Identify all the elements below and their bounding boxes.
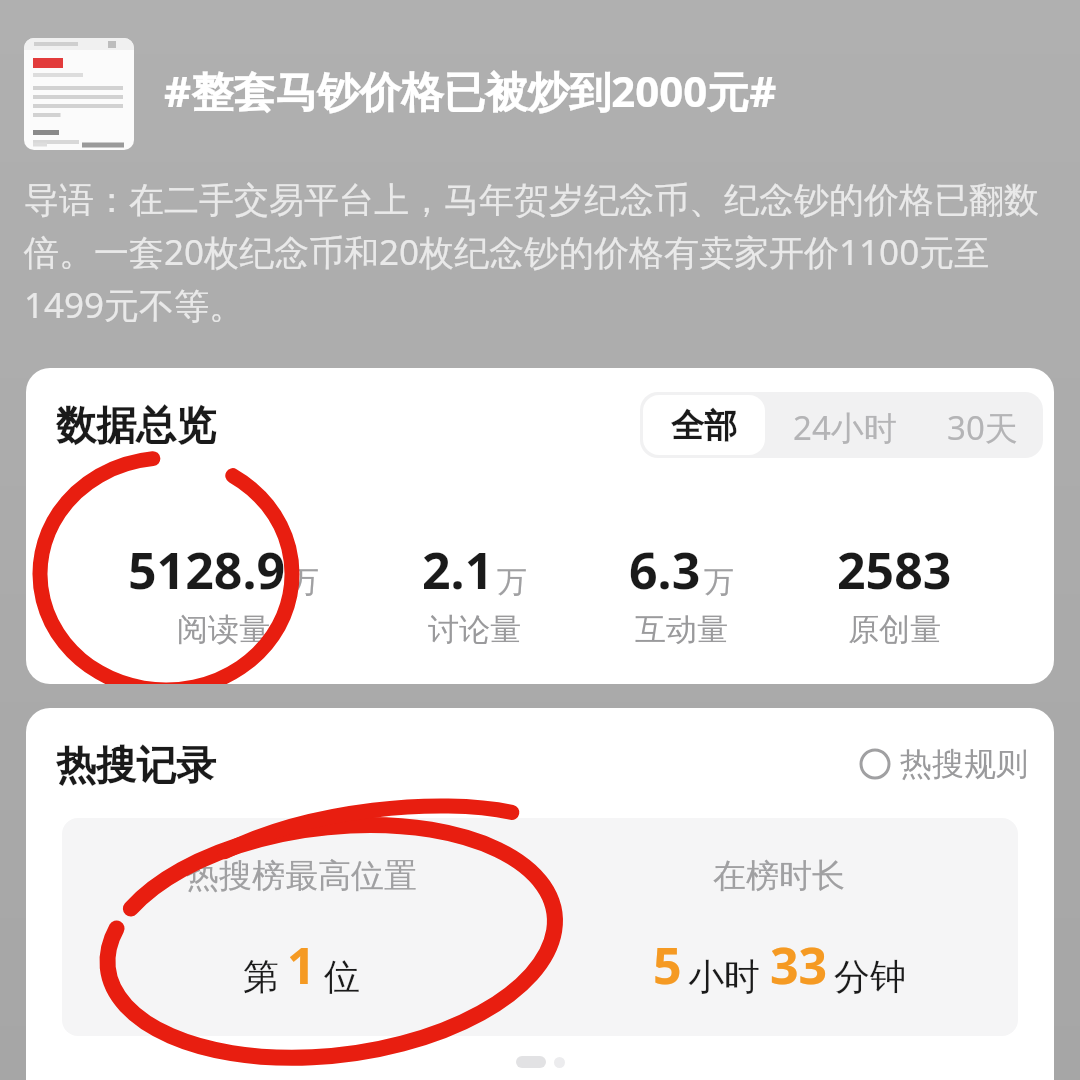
staticText: 第 xyxy=(243,954,279,999)
staticText: 分钟 xyxy=(834,954,906,999)
staticText: 2.1 xyxy=(422,536,494,604)
button[interactable]: 全部 xyxy=(643,395,765,455)
staticText: 5128.9 xyxy=(128,536,286,604)
staticText: 24小时 xyxy=(793,405,897,445)
staticText: 阅读量 xyxy=(177,610,270,649)
staticText: 位 xyxy=(324,954,360,999)
staticText: 2583 xyxy=(837,536,952,604)
staticText: 万 xyxy=(704,563,734,601)
button[interactable]: 在榜时长 xyxy=(540,818,1018,1036)
button[interactable]: Post preview xyxy=(24,38,134,150)
button[interactable]: 24小时 xyxy=(771,395,919,455)
staticText: #整套马钞价格已被炒到2000元# xyxy=(164,62,777,119)
staticText: 万 xyxy=(497,563,527,601)
staticText: 数据总览 xyxy=(56,400,216,450)
staticText: 原创量 xyxy=(848,610,941,649)
staticText: 热搜记录 xyxy=(56,740,216,790)
button[interactable]: 30天 xyxy=(925,395,1040,455)
staticText: 全部 xyxy=(671,405,737,445)
staticText: 热搜规则 xyxy=(900,744,1028,784)
button[interactable]: 热搜榜最高位置 xyxy=(62,818,540,1036)
button[interactable]: 热搜规则 xyxy=(859,744,1028,784)
staticText: 6.3 xyxy=(629,536,701,604)
staticText: 小时 xyxy=(688,954,760,999)
staticText: 在榜时长 xyxy=(713,855,845,897)
staticText: 导语：在二手交易平台上，马年贺岁纪念币、纪念钞的价格已翻数倍。一套20枚纪念币和… xyxy=(24,178,1050,328)
staticText: 热搜榜最高位置 xyxy=(186,855,417,897)
staticText: 万 xyxy=(289,563,319,601)
staticText: 30天 xyxy=(947,405,1018,445)
staticText: 互动量 xyxy=(635,610,728,649)
staticText: 1 xyxy=(287,931,316,999)
staticText: 5 xyxy=(653,931,682,999)
staticText: 讨论量 xyxy=(428,610,521,649)
staticText: 33 xyxy=(770,931,828,999)
